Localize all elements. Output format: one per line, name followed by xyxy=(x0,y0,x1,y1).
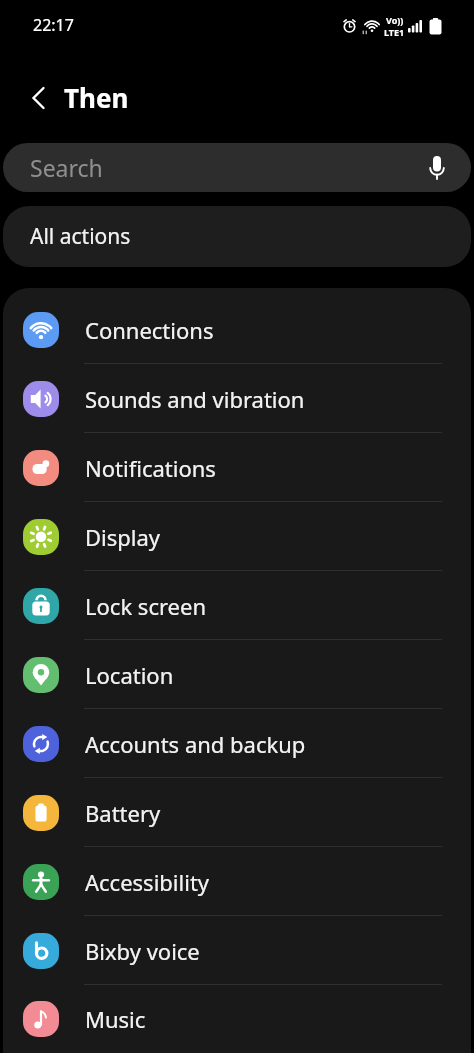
button[interactable]: Location xyxy=(3,640,471,709)
button[interactable]: Accessibility xyxy=(3,847,471,916)
button[interactable]: Accounts and backup xyxy=(3,709,471,778)
staticText: Vo)) xyxy=(386,14,404,26)
button[interactable]: Search xyxy=(3,143,471,192)
staticText: Music xyxy=(85,1004,146,1034)
staticText: Sounds and vibration xyxy=(85,384,305,414)
button[interactable]: Lock screen xyxy=(3,571,471,640)
staticText: Battery xyxy=(85,798,161,828)
button[interactable]: Sounds and vibration xyxy=(3,364,471,433)
button[interactable]: Music xyxy=(3,985,471,1053)
staticText: LTE1 xyxy=(384,26,405,38)
staticText: Bixby voice xyxy=(85,936,200,966)
staticText: Then xyxy=(64,80,129,115)
staticText: Accessibility xyxy=(85,867,210,897)
staticText: Location xyxy=(85,660,174,690)
staticText: Lock screen xyxy=(85,591,207,621)
staticText: Display xyxy=(85,522,161,552)
staticText: Connections xyxy=(85,315,214,345)
staticText: All actions xyxy=(30,222,131,251)
button[interactable]: Battery xyxy=(3,778,471,847)
staticText: Accounts and backup xyxy=(85,729,306,759)
staticText: Notifications xyxy=(85,453,216,483)
staticText: Search xyxy=(30,152,103,183)
button[interactable]: All actions xyxy=(3,206,471,267)
button[interactable]: Display xyxy=(3,502,471,571)
button[interactable]: Bixby voice xyxy=(3,916,471,985)
button[interactable] xyxy=(18,78,58,118)
staticText: 22:17 xyxy=(33,14,74,36)
button[interactable]: Notifications xyxy=(3,433,471,502)
button[interactable]: Connections xyxy=(3,295,471,364)
